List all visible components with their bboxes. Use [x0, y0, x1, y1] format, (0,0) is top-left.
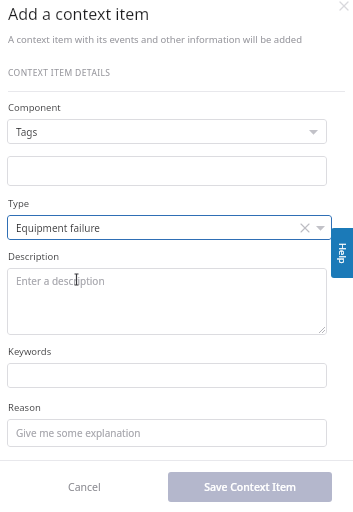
button[interactable]: Close	[335, 0, 353, 15]
staticText: Tags	[16, 125, 309, 139]
staticText: Enter a description	[16, 274, 105, 288]
staticText: Reason	[8, 401, 41, 414]
button[interactable]: Tags	[7, 119, 327, 144]
staticText: Cancel	[68, 480, 101, 494]
staticText: CONTEXT ITEM DETAILS	[8, 67, 111, 79]
button[interactable]: Enter a description	[7, 268, 327, 335]
staticText: Save Context Item	[204, 480, 296, 494]
button[interactable]	[7, 156, 327, 186]
button[interactable]: Give me some explanation	[7, 419, 327, 447]
button[interactable]: Equipment failure	[7, 215, 332, 240]
staticText: Equipment failure	[16, 221, 299, 235]
staticText: Help	[336, 243, 349, 264]
staticText: Give me some explanation	[16, 426, 141, 440]
staticText: Description	[8, 250, 60, 263]
staticText: Keywords	[8, 345, 52, 358]
staticText: Component	[8, 101, 61, 114]
staticText: A context item with its events and other…	[8, 33, 303, 46]
button[interactable]: Cancel	[0, 472, 168, 502]
staticText: Add a context item	[8, 3, 150, 25]
button[interactable]: Help	[331, 228, 353, 278]
staticText: Type	[8, 197, 30, 210]
button[interactable]: Clear selection	[299, 222, 311, 234]
button[interactable]	[7, 363, 327, 388]
button[interactable]: Save Context Item	[168, 472, 332, 502]
